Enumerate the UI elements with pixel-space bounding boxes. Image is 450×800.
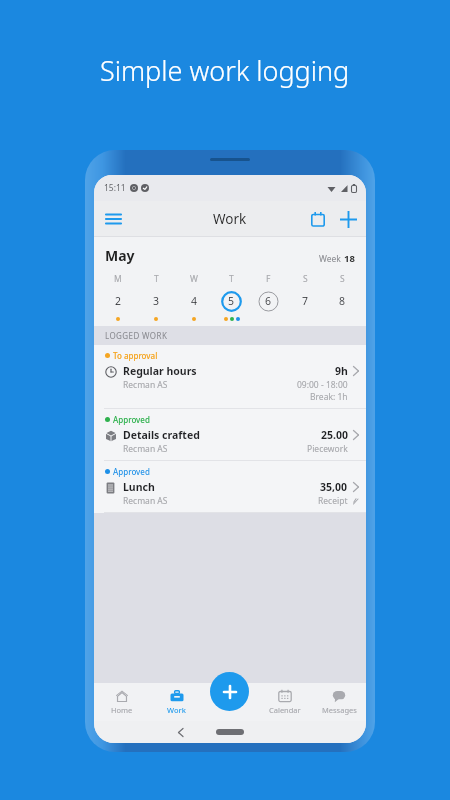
staticText: T	[154, 273, 159, 285]
button[interactable]: 7	[287, 290, 324, 312]
staticText: Simple work logging	[100, 52, 350, 89]
staticText: 9h	[335, 364, 348, 378]
button[interactable]: To approval	[94, 345, 366, 409]
staticText: To approval	[113, 350, 158, 361]
button[interactable]: 2	[99, 290, 137, 312]
staticText: Calendar	[269, 705, 301, 715]
staticText: 5	[228, 294, 235, 308]
button[interactable]: Approved	[94, 409, 366, 461]
staticText: 15:11	[104, 182, 126, 194]
button[interactable]: Work	[149, 683, 204, 721]
staticText: M	[114, 273, 122, 285]
button[interactable]: Calendar	[258, 683, 312, 721]
staticText: S	[340, 273, 345, 285]
button[interactable]: Messages	[312, 683, 366, 721]
staticText: May	[105, 246, 135, 265]
staticText: Recman AS	[123, 443, 168, 455]
button[interactable]: 6	[250, 290, 287, 312]
button[interactable]: 3	[137, 290, 175, 312]
staticText: Break: 1h	[310, 391, 348, 403]
staticText: F	[266, 273, 271, 285]
staticText: 3	[153, 294, 160, 308]
button[interactable]: 4	[175, 290, 213, 312]
staticText: Piecework	[307, 443, 348, 455]
staticText: W	[190, 273, 198, 285]
staticText: LOGGED WORK	[105, 330, 168, 341]
staticText: Messages	[322, 705, 357, 715]
staticText: S	[303, 273, 308, 285]
staticText: 25.00	[321, 428, 348, 442]
staticText: Regular hours	[123, 364, 197, 378]
staticText: Week	[319, 253, 344, 265]
staticText: Receipt	[318, 495, 348, 507]
staticText: Work	[213, 210, 247, 228]
button[interactable]: 5	[213, 290, 250, 312]
button[interactable]: Add entry	[210, 672, 249, 711]
button[interactable]: Menu	[98, 204, 128, 234]
staticText: 18	[344, 252, 355, 265]
button[interactable]: Add	[333, 204, 363, 234]
staticText: 35,00	[320, 480, 348, 494]
staticText: T	[229, 273, 234, 285]
button[interactable]: Home	[94, 683, 149, 721]
staticText: Recman AS	[123, 495, 168, 507]
staticText: Lunch	[123, 480, 155, 494]
staticText: 7	[302, 294, 309, 308]
staticText: Details crafted	[123, 428, 200, 442]
staticText: 2	[115, 294, 122, 308]
staticText: 4	[191, 294, 198, 308]
button[interactable]: Calendar	[303, 204, 333, 234]
button[interactable]: Home	[216, 729, 244, 735]
staticText: Approved	[113, 414, 150, 425]
staticText: Work	[167, 705, 186, 715]
button[interactable]: 8	[324, 290, 361, 312]
staticText: 8	[339, 294, 346, 308]
staticText: Approved	[113, 466, 150, 477]
staticText: 6	[265, 294, 272, 308]
staticText: 09:00 - 18:00	[297, 379, 348, 391]
button[interactable]: Approved	[94, 461, 366, 513]
staticText: Recman AS	[123, 379, 168, 391]
staticText: Home	[111, 705, 133, 715]
button[interactable]: Back	[172, 724, 188, 740]
